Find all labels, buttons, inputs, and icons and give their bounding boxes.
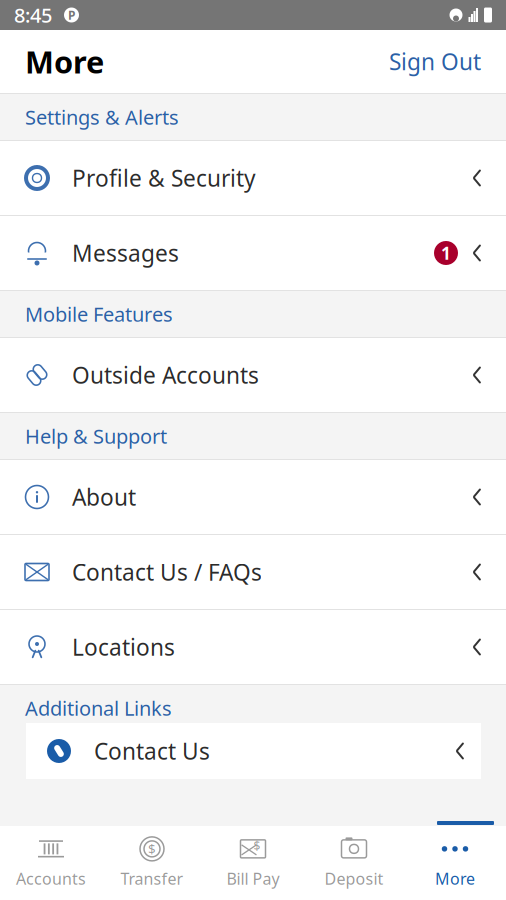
staticText: Contact Us bbox=[94, 736, 210, 766]
staticText: Locations bbox=[72, 632, 175, 662]
button[interactable]: Accounts bbox=[0, 830, 101, 896]
button[interactable]: Contact Us / FAQs bbox=[0, 535, 506, 609]
button[interactable]: About bbox=[0, 460, 506, 534]
staticText: 1 bbox=[441, 241, 451, 264]
staticText: About bbox=[72, 482, 136, 512]
button[interactable]: More bbox=[404, 830, 505, 896]
staticText: More bbox=[25, 41, 104, 82]
button[interactable]: Outside Accounts bbox=[0, 338, 506, 412]
staticText: $ bbox=[253, 838, 260, 854]
staticText: Deposit bbox=[324, 868, 383, 889]
button[interactable]: Locations bbox=[0, 610, 506, 684]
staticText: $ bbox=[148, 840, 156, 858]
staticText: Outside Accounts bbox=[72, 360, 259, 390]
staticText: More bbox=[435, 868, 475, 889]
button[interactable]: $ bbox=[101, 830, 202, 896]
button[interactable]: Profile & Security bbox=[0, 141, 506, 215]
button[interactable]: Messages bbox=[0, 216, 506, 290]
staticText: 8:45 bbox=[14, 2, 52, 28]
staticText: Profile & Security bbox=[72, 163, 256, 193]
staticText: Help & Support bbox=[25, 423, 167, 449]
button[interactable]: Sign Out bbox=[373, 36, 481, 86]
staticText: P bbox=[68, 7, 75, 23]
staticText: Accounts bbox=[16, 868, 86, 889]
button[interactable]: Deposit bbox=[303, 830, 404, 896]
staticText: Transfer bbox=[120, 868, 183, 889]
staticText: Messages bbox=[72, 238, 179, 268]
staticText: Settings & Alerts bbox=[25, 104, 179, 130]
staticText: Contact Us / FAQs bbox=[72, 557, 262, 587]
staticText: Bill Pay bbox=[226, 868, 279, 889]
button[interactable]: Contact Us bbox=[26, 723, 481, 779]
staticText: Mobile Features bbox=[25, 301, 173, 327]
staticText: Sign Out bbox=[389, 46, 481, 76]
staticText: Additional Links bbox=[25, 695, 172, 721]
button[interactable]: $ bbox=[202, 830, 303, 896]
